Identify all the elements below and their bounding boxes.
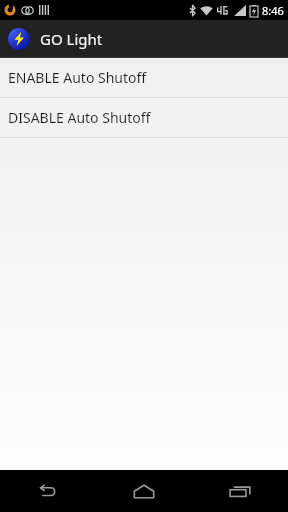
staticText: ENABLE Auto Shutoff [8,68,147,87]
staticText: 8:46 [262,3,284,18]
button[interactable]: Home [96,470,192,512]
button[interactable]: ENABLE Auto Shutoff [0,58,288,97]
staticText: GO Light [40,29,103,49]
button[interactable]: Back [0,470,96,512]
button[interactable]: Recent apps [192,470,288,512]
staticText: DISABLE Auto Shutoff [8,108,151,127]
button[interactable]: DISABLE Auto Shutoff [0,98,288,137]
